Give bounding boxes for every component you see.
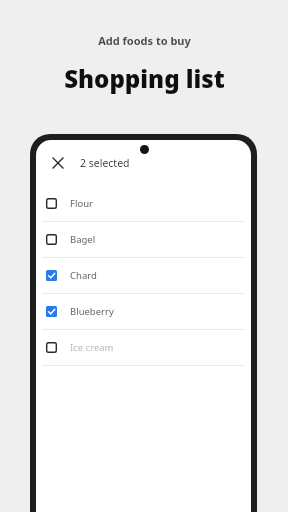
button[interactable]: Bagel [36,222,251,257]
staticText: Ice cream [70,341,114,354]
staticText: Flour [70,197,93,210]
button[interactable]: Ice cream [36,330,251,365]
button[interactable]: Close selection [36,140,251,186]
staticText: Shopping list [64,62,225,95]
staticText: Chard [70,269,97,282]
button[interactable]: Close selection [48,153,68,173]
staticText: Blueberry [70,305,114,318]
button[interactable]: Chard [36,258,251,293]
staticText: 2 selected [80,156,130,170]
button[interactable]: Flour [36,186,251,221]
staticText: Add foods to buy [98,33,191,48]
button[interactable]: Blueberry [36,294,251,329]
staticText: Bagel [70,233,96,246]
